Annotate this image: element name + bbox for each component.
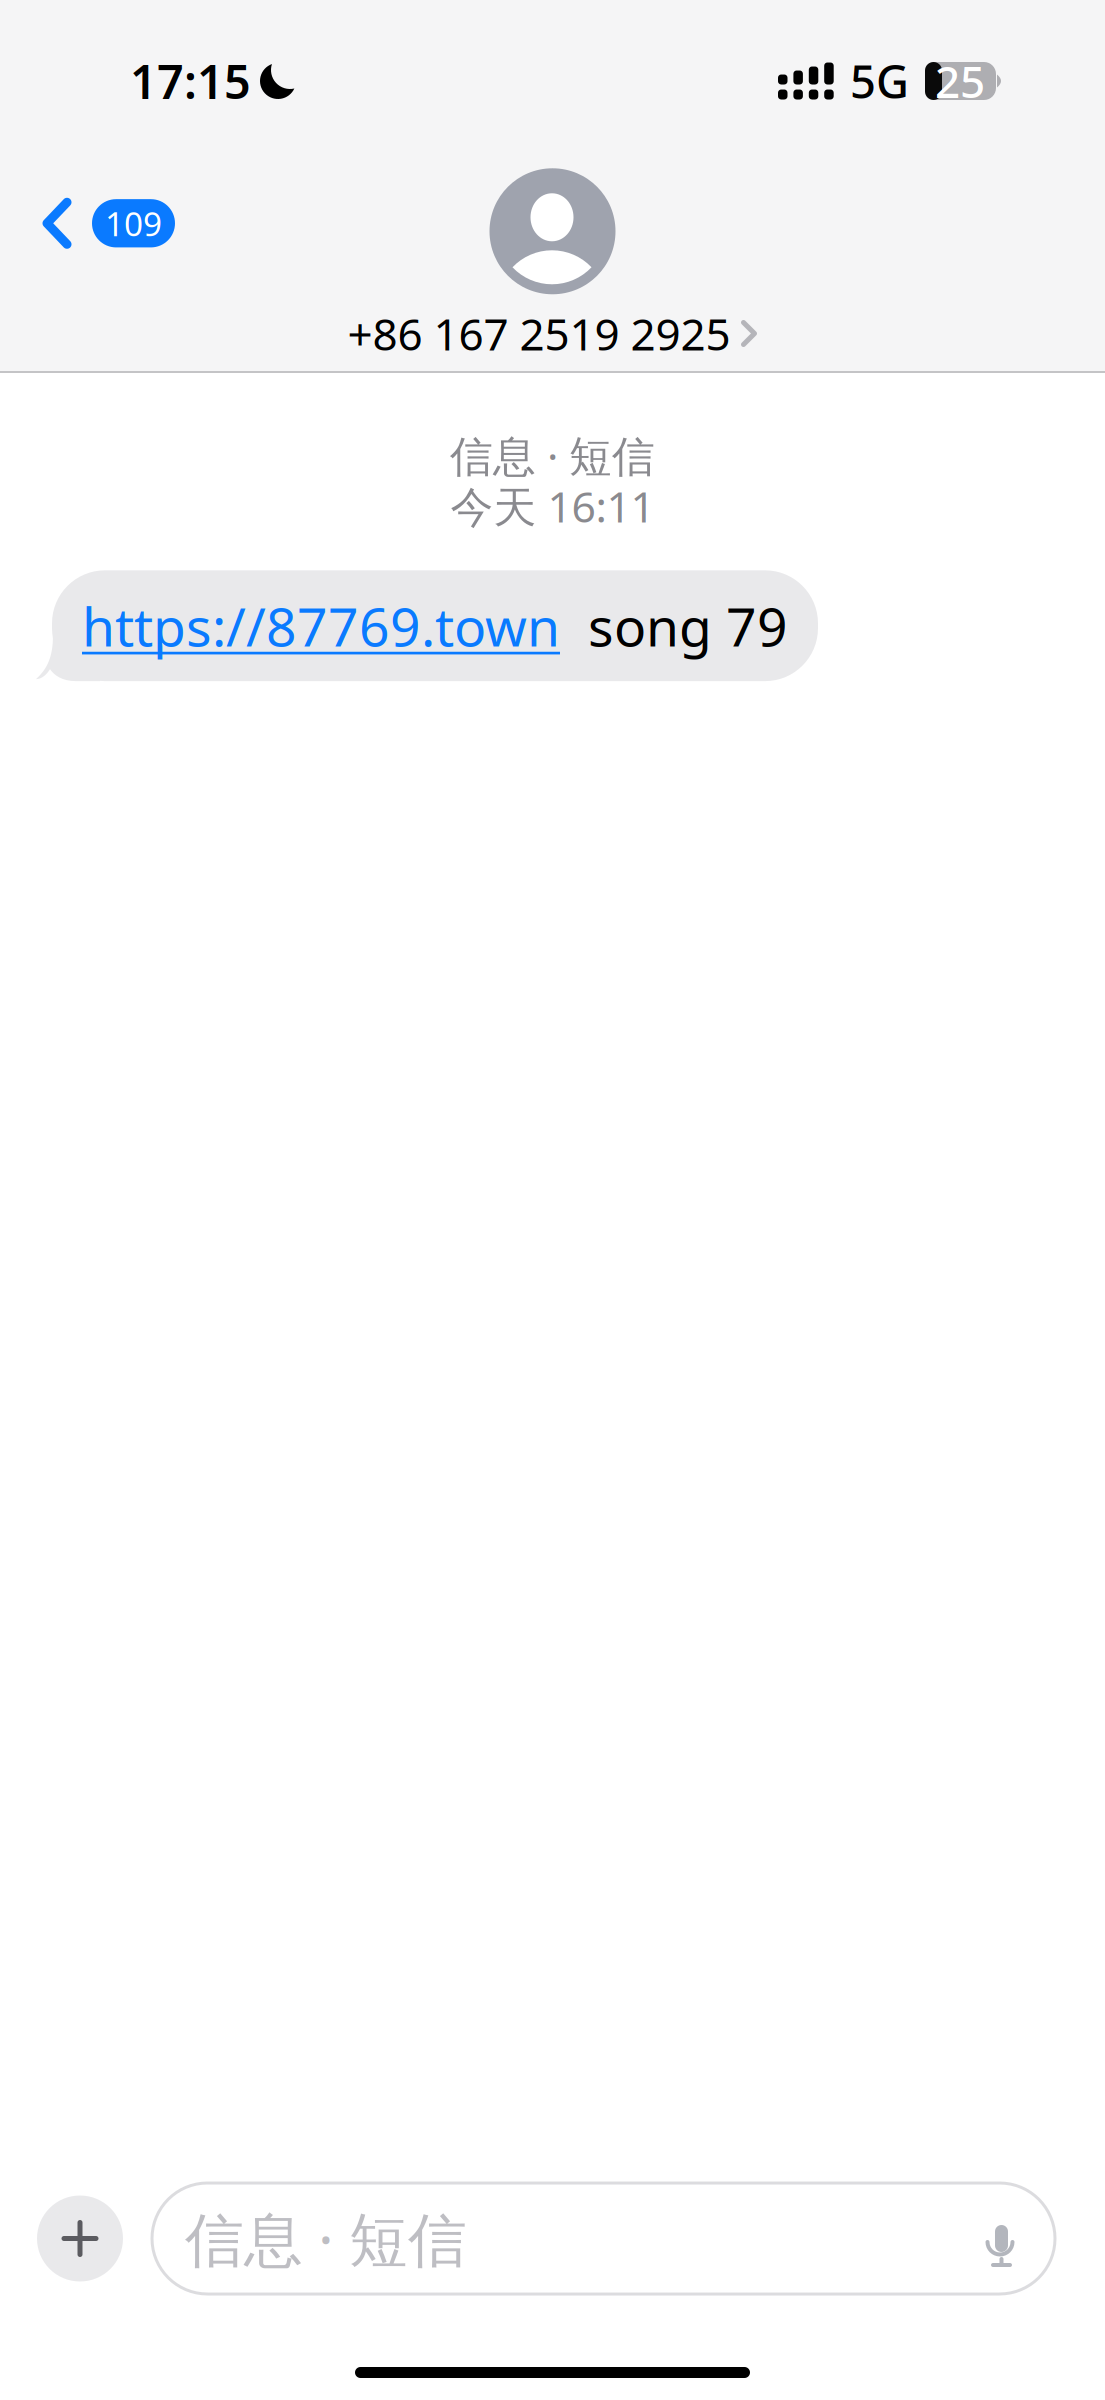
button[interactable]: Back to 109 conversations <box>42 198 175 248</box>
staticText: song 79 <box>560 590 788 661</box>
staticText: 109 <box>105 201 162 245</box>
staticText: 5G <box>850 51 909 111</box>
staticText: 信息 · 短信 <box>185 2199 467 2277</box>
staticText: https://87769.town <box>82 590 560 661</box>
button[interactable]: Add attachment <box>37 2195 123 2281</box>
button[interactable]: +86 167 2519 2925 <box>347 294 757 363</box>
staticText: 17:15 <box>130 50 251 112</box>
button[interactable]: 信息 · 短信 <box>152 2183 1055 2294</box>
staticText: +86 167 2519 2925 <box>347 304 730 363</box>
staticText: 25 <box>935 52 985 110</box>
staticText: 今天 16:11 <box>450 478 654 534</box>
staticText: 信息 · 短信 <box>450 427 655 484</box>
button[interactable]: https://87769.town <box>52 570 818 681</box>
